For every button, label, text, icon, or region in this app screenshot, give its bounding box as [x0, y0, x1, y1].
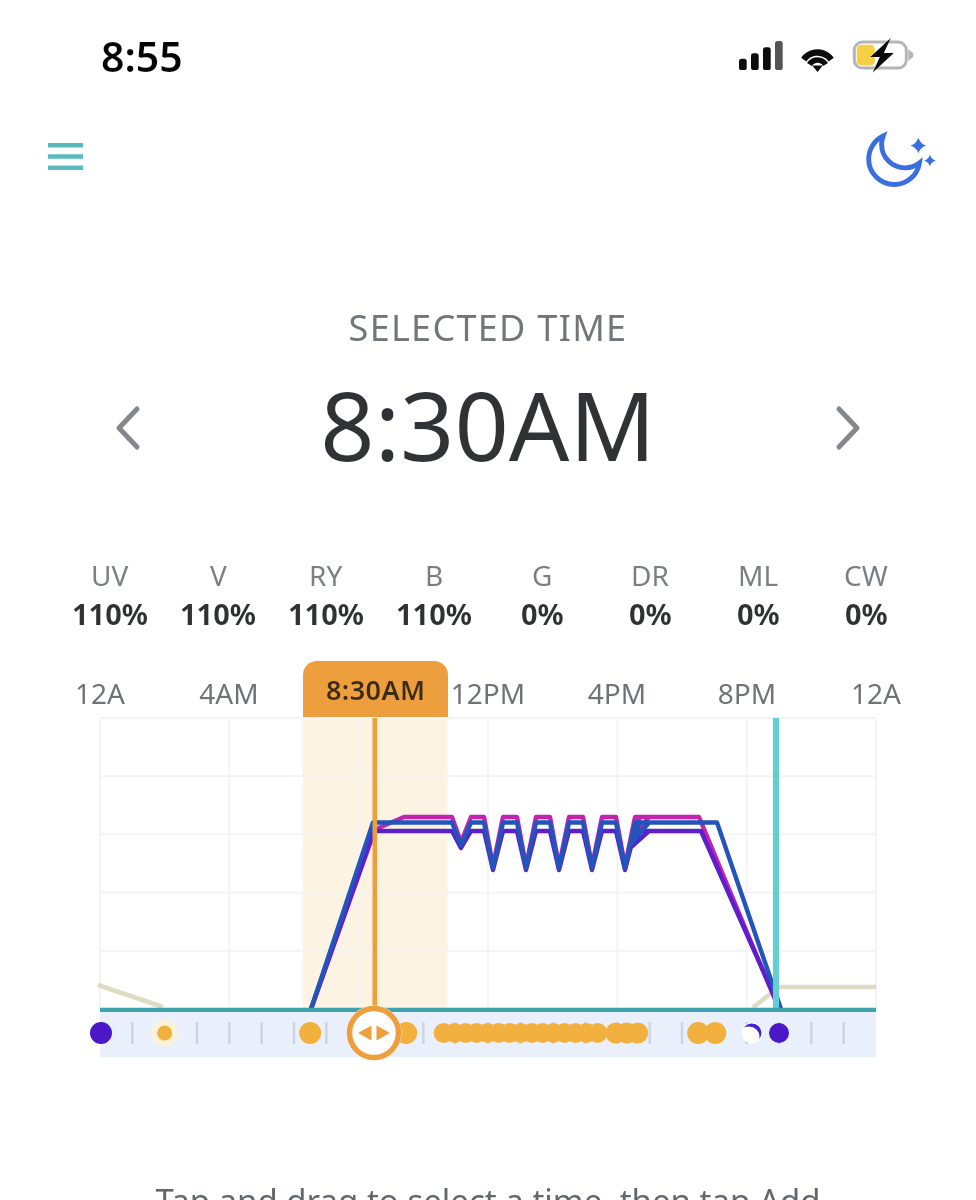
staticText: 110% — [396, 594, 472, 633]
staticText: UV — [91, 556, 129, 594]
staticText: G — [532, 556, 553, 594]
staticText: 110% — [180, 594, 256, 633]
staticText: 0% — [845, 594, 888, 633]
staticText: ML — [738, 556, 779, 594]
staticText: 8PM — [687, 674, 807, 712]
staticText: SELECTED TIME — [0, 303, 976, 352]
button[interactable]: Previous time — [98, 398, 158, 458]
staticText: 12A — [816, 674, 936, 712]
staticText: 12A — [40, 674, 160, 712]
staticText: B — [425, 556, 444, 594]
staticText: 0% — [629, 594, 672, 633]
staticText: 8:30AM — [0, 359, 976, 488]
staticText: 0% — [737, 594, 780, 633]
staticText: 110% — [72, 594, 148, 633]
button[interactable]: Schedule timeline, drag to select a time — [100, 718, 876, 1057]
staticText: 110% — [288, 594, 364, 633]
button[interactable]: Night mode — [853, 115, 935, 197]
staticText: V — [210, 556, 227, 594]
staticText: 8:55 — [101, 28, 183, 84]
staticText: 12PM — [428, 674, 548, 712]
staticText: CW — [844, 556, 888, 594]
button[interactable]: Next time — [818, 398, 878, 458]
button[interactable]: 8:30AM — [303, 661, 448, 717]
staticText: RY — [309, 556, 343, 594]
staticText: 8:30AM — [326, 671, 426, 708]
staticText: DR — [631, 556, 669, 594]
staticText: 4AM — [169, 674, 289, 712]
staticText: Tap and drag to select a time, then tap … — [0, 1178, 976, 1200]
button[interactable]: Menu — [24, 116, 106, 198]
staticText: 0% — [521, 594, 564, 633]
staticText: 4PM — [557, 674, 677, 712]
